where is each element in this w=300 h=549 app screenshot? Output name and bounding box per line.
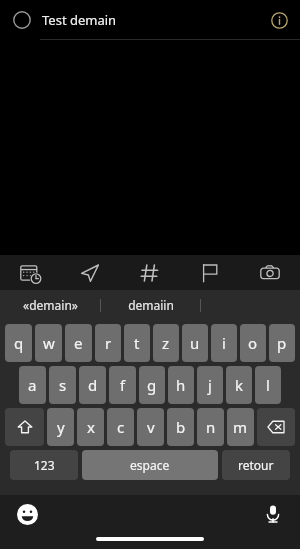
button[interactable]: c xyxy=(107,408,134,446)
staticText: e xyxy=(74,333,83,353)
staticText: p xyxy=(277,333,287,353)
staticText: u xyxy=(190,333,200,353)
staticText: w xyxy=(43,333,55,353)
button[interactable]: l xyxy=(255,366,281,404)
staticText: v xyxy=(147,417,155,437)
staticText: b xyxy=(176,417,186,437)
staticText: c xyxy=(117,417,125,437)
button[interactable]: z xyxy=(153,324,179,362)
button[interactable]: Schedule date xyxy=(0,255,60,290)
staticText: Test demain xyxy=(42,11,117,29)
button[interactable]: a xyxy=(19,366,46,404)
button[interactable]: Send xyxy=(60,255,120,290)
button[interactable]: h xyxy=(168,366,194,404)
button[interactable]: d xyxy=(79,366,106,404)
staticText: d xyxy=(88,375,98,395)
staticText: o xyxy=(248,333,258,353)
staticText: m xyxy=(233,417,248,437)
staticText: g xyxy=(147,375,157,395)
button[interactable]: demaiin xyxy=(101,290,200,320)
staticText: espace xyxy=(130,457,170,473)
button[interactable]: p xyxy=(269,324,295,362)
button[interactable]: s xyxy=(49,366,76,404)
button[interactable]: Shift xyxy=(5,408,44,446)
staticText: q xyxy=(14,333,24,353)
button[interactable]: k xyxy=(226,366,252,404)
button[interactable]: t xyxy=(124,324,150,362)
button[interactable]: Tags xyxy=(120,255,180,290)
button[interactable]: e xyxy=(65,324,92,362)
staticText: 123 xyxy=(34,457,55,473)
staticText: k xyxy=(235,375,244,395)
button[interactable]: w xyxy=(35,324,62,362)
button[interactable]: Mark complete xyxy=(13,11,31,29)
staticText: t xyxy=(134,333,140,353)
button[interactable]: 123 xyxy=(10,450,78,480)
button[interactable]: n xyxy=(197,408,224,446)
button[interactable]: o xyxy=(240,324,266,362)
button[interactable]: Voice input xyxy=(256,497,290,531)
staticText: a xyxy=(28,375,37,395)
staticText: n xyxy=(206,417,216,437)
staticText: y xyxy=(57,417,65,437)
button[interactable]: «demain» xyxy=(0,290,100,320)
button[interactable]: espace xyxy=(82,450,218,480)
button[interactable]: Emoji keyboard xyxy=(10,497,44,531)
staticText: r xyxy=(105,333,112,353)
button[interactable]: Backspace xyxy=(257,408,295,446)
button[interactable]: r xyxy=(95,324,121,362)
staticText: «demain» xyxy=(23,297,78,313)
staticText: f xyxy=(120,375,126,395)
staticText: retour xyxy=(238,457,274,473)
staticText: s xyxy=(59,375,67,395)
button[interactable]: Mark complete xyxy=(0,0,300,40)
button[interactable]: g xyxy=(139,366,165,404)
button[interactable]: m xyxy=(227,408,254,446)
button[interactable]: retour xyxy=(222,450,290,480)
staticText: x xyxy=(87,417,95,437)
button[interactable]: v xyxy=(137,408,164,446)
button[interactable]: i xyxy=(211,324,237,362)
staticText: l xyxy=(266,375,270,395)
button[interactable]: Camera xyxy=(240,255,300,290)
button[interactable]: q xyxy=(5,324,32,362)
staticText: demaiin xyxy=(128,297,174,313)
button[interactable]: j xyxy=(197,366,223,404)
staticText: j xyxy=(208,375,212,395)
button[interactable]: f xyxy=(109,366,136,404)
button[interactable]: b xyxy=(167,408,194,446)
button[interactable]: y xyxy=(47,408,74,446)
button[interactable]: Priority flag xyxy=(180,255,240,290)
button[interactable]: x xyxy=(77,408,104,446)
button[interactable]: Task info xyxy=(262,3,296,37)
staticText: i xyxy=(222,333,226,353)
staticText: h xyxy=(176,375,186,395)
staticText: z xyxy=(162,333,170,353)
button[interactable]: u xyxy=(182,324,208,362)
